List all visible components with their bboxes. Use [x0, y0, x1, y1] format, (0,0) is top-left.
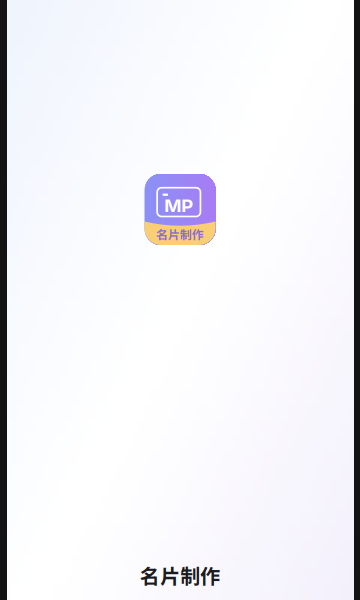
- staticText: 名片制作: [140, 560, 220, 589]
- staticText: MP: [164, 194, 193, 217]
- staticText: 名片制作: [156, 225, 204, 243]
